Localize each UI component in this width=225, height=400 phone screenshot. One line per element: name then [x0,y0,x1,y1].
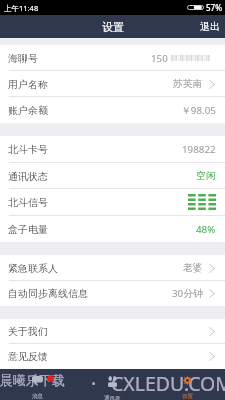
button[interactable]: 自动同步离线信息 [0,281,225,306]
staticText: 设置 [182,393,193,400]
staticText: 账户余额 [8,104,48,117]
staticText: · [91,370,97,397]
staticText: ￥98.05 [181,104,216,117]
staticText: 意见反馈 [8,350,48,363]
button[interactable]: 北斗信号 [0,189,225,216]
button[interactable]: 紧急联系人 [0,255,225,281]
staticText: 57% [206,2,222,13]
button[interactable]: 北斗卡号 [0,136,225,163]
staticText: 上午11:48 [4,3,39,13]
button[interactable]: 用户名称 [0,71,225,97]
staticText: 苏英南 [173,78,203,90]
staticText: 30分钟 [172,287,203,300]
button[interactable]: 消息 [0,369,75,400]
button[interactable]: 通讯状态 [0,163,225,189]
staticText: 紧急联系人 [8,262,58,275]
staticText: 北斗卡号 [8,143,48,156]
staticText: 通讯状态 [8,170,48,183]
staticText: 北斗信号 [8,196,48,209]
staticText: 晨曦乐下载 [0,372,65,388]
staticText: CXLEDU.COM [111,370,225,397]
staticText: 150 [151,52,168,65]
staticText: 退出 [200,20,220,33]
staticText: 盒子电量 [8,223,48,236]
button[interactable]: 设置 [150,369,225,400]
button[interactable]: 海聊号 [0,45,225,71]
staticText: 空闲 [196,170,216,182]
staticText: 自动同步离线信息 [8,287,88,300]
staticText: 198822 [182,143,216,156]
button[interactable]: 盒子电量 [0,216,225,242]
staticText: 设置 [102,20,124,34]
button[interactable]: 账户余额 [0,97,225,123]
staticText: 海聊号 [8,52,38,65]
staticText: 48% [196,223,216,236]
button[interactable]: 退出 [195,15,225,38]
staticText: 老婆 [183,262,203,274]
staticText: 关于我们 [8,325,48,338]
staticText: 通讯录 [104,395,121,400]
staticText: 消息 [32,393,43,400]
button[interactable]: 意见反馈 [0,344,225,369]
button[interactable]: 关于我们 [0,319,225,344]
button[interactable]: 通讯录 [75,369,150,400]
staticText: 用户名称 [8,78,48,91]
